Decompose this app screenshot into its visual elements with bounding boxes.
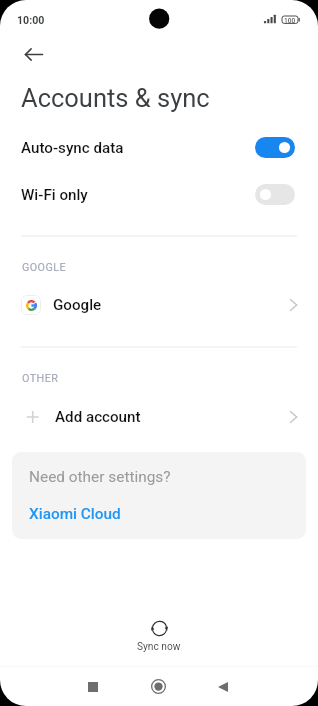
button[interactable]: Sync now	[0, 620, 318, 653]
staticText: GOOGLE	[22, 261, 66, 274]
button[interactable]: Wi-Fi only	[0, 171, 318, 218]
staticText: OTHER	[22, 372, 59, 385]
staticText: Sync now	[137, 641, 181, 653]
staticText: Need other settings?	[29, 468, 171, 486]
staticText: Wi-Fi only	[21, 186, 88, 204]
staticText: 10:00	[17, 14, 45, 26]
button[interactable]: Back	[203, 667, 243, 706]
button[interactable]: Need other settings?	[12, 452, 306, 539]
staticText: Auto-sync data	[21, 139, 124, 157]
button[interactable]: Google	[0, 286, 318, 324]
staticText: 100	[284, 17, 296, 25]
button[interactable]: Add account	[0, 398, 318, 436]
staticText: Add account	[55, 408, 141, 426]
staticText: Accounts & sync	[21, 83, 210, 113]
button[interactable]: Auto-sync data	[0, 124, 318, 171]
button[interactable]: Back	[16, 36, 52, 72]
button[interactable]: Home	[138, 667, 178, 706]
staticText: Google	[53, 296, 102, 314]
staticText: Xiaomi Cloud	[29, 505, 121, 523]
button[interactable]: Recents	[73, 667, 113, 706]
